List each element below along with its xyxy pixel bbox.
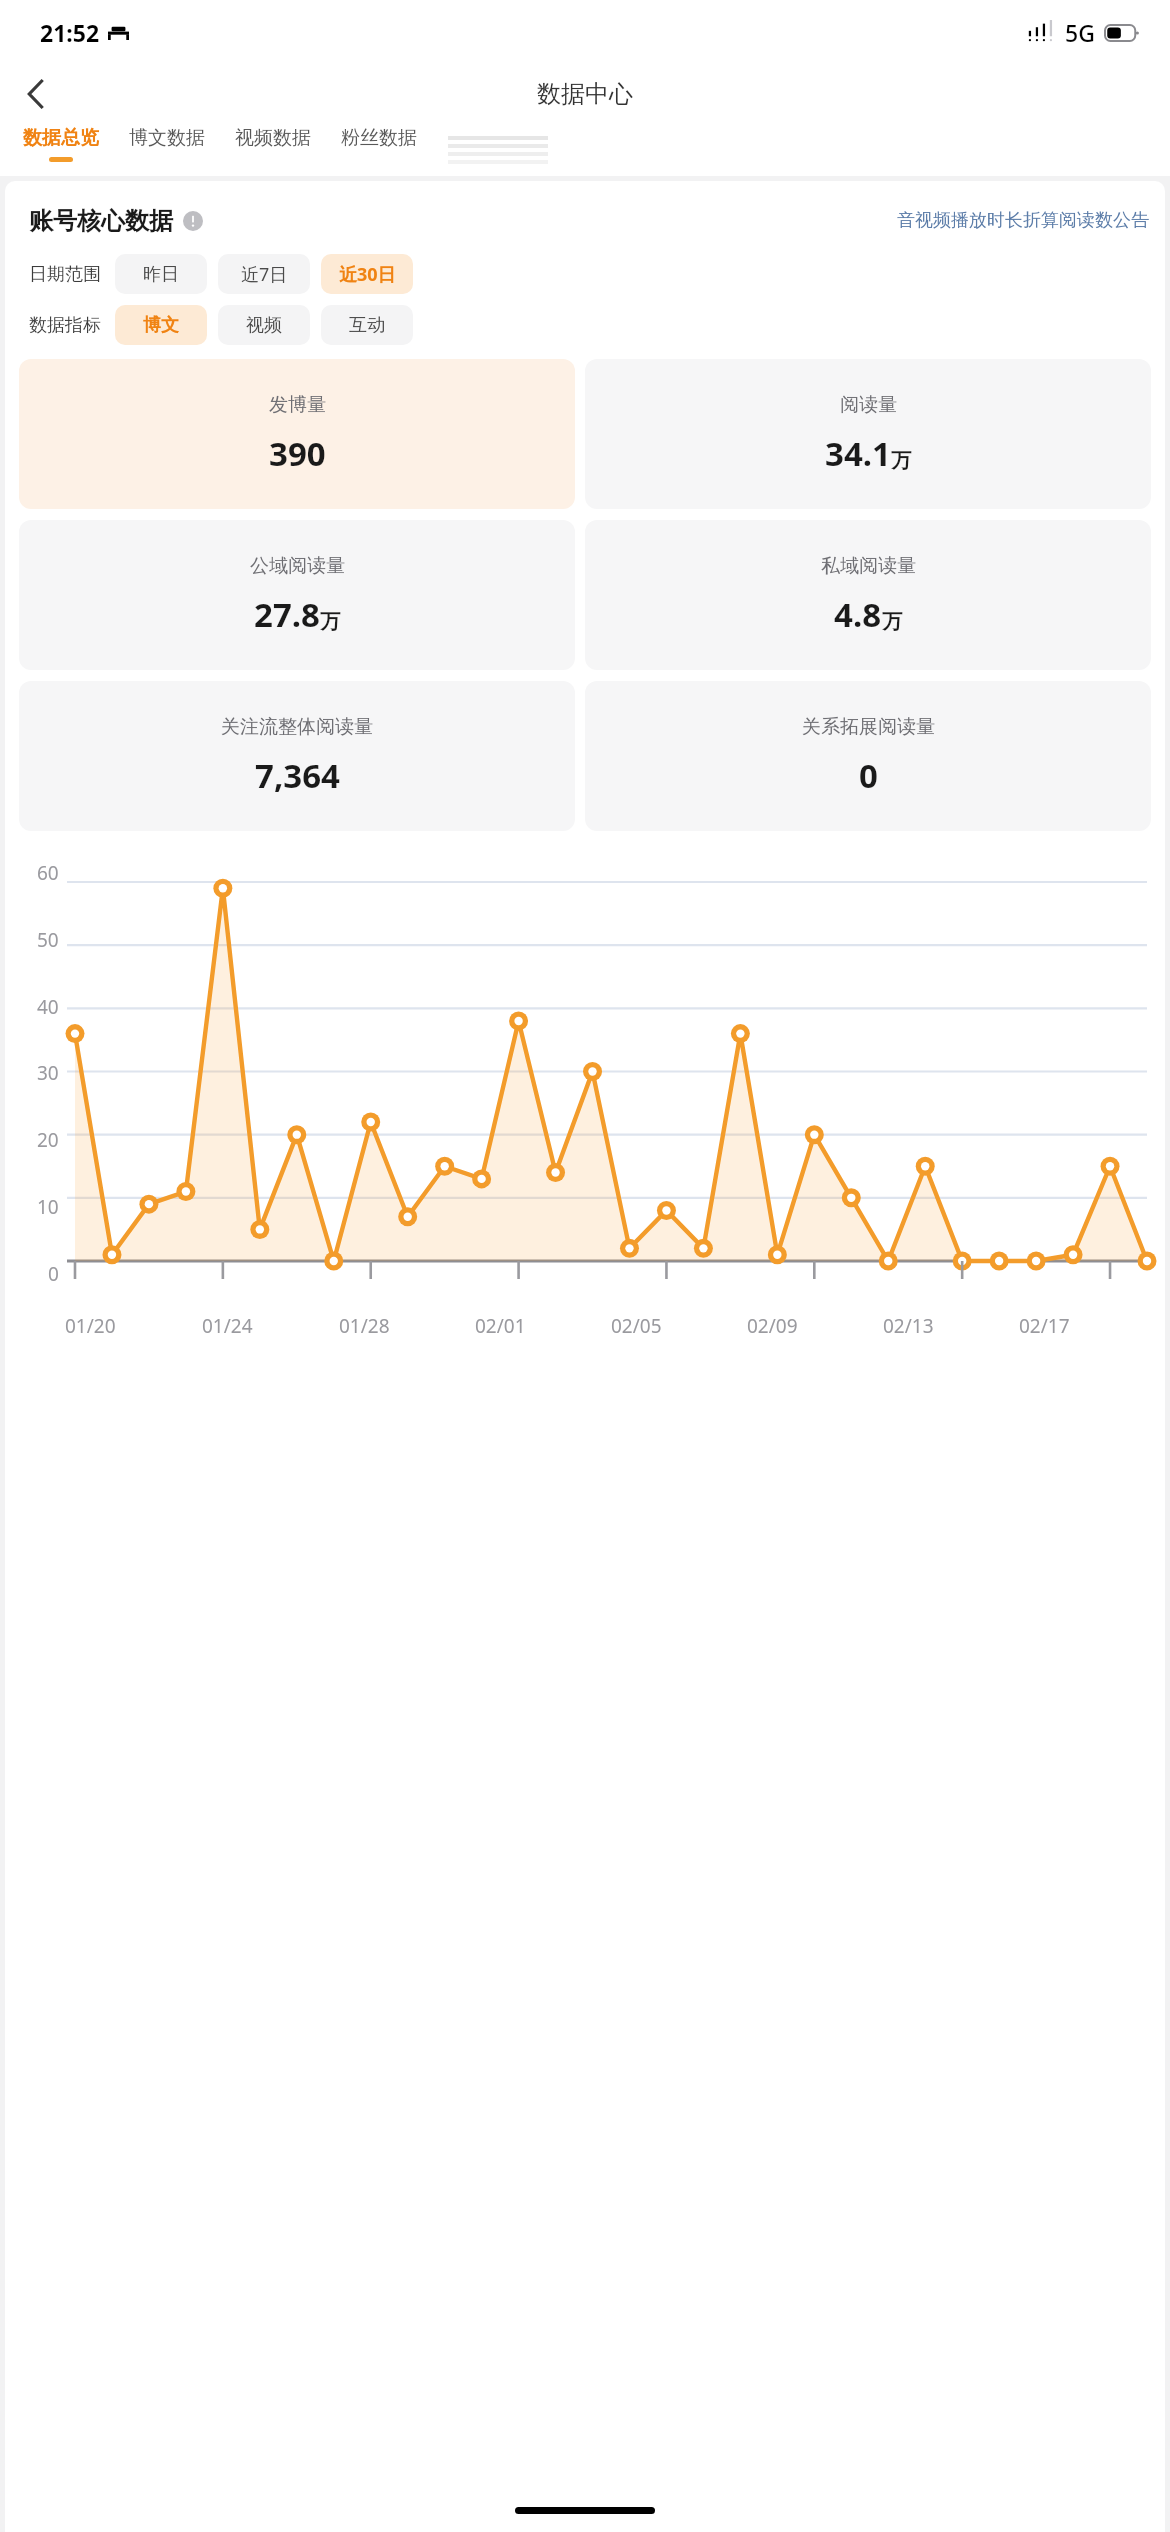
button[interactable]: 昨日 bbox=[115, 254, 207, 294]
staticText: 博文数据 bbox=[129, 126, 205, 150]
button[interactable]: 发博量 bbox=[19, 359, 575, 509]
staticText: 阅读量 bbox=[840, 393, 897, 417]
staticText: 4.8 bbox=[834, 592, 882, 637]
staticText: 日期范围 bbox=[29, 263, 101, 286]
button[interactable]: 阅读量 bbox=[585, 359, 1151, 509]
staticText: 万 bbox=[882, 609, 902, 634]
staticText: 34.1 bbox=[825, 431, 891, 476]
button[interactable]: 互动 bbox=[321, 305, 413, 345]
staticText: 01/24 bbox=[202, 1313, 253, 1339]
staticText: 30 bbox=[37, 1060, 59, 1086]
staticText: 21:52 bbox=[40, 17, 100, 48]
button[interactable]: 粉丝数据 bbox=[326, 124, 432, 159]
staticText: 02/01 bbox=[475, 1313, 526, 1339]
button[interactable]: Back bbox=[8, 66, 64, 122]
staticText: 数据指标 bbox=[29, 314, 101, 337]
staticText: 01/20 bbox=[65, 1313, 116, 1339]
staticText: 万 bbox=[320, 609, 340, 634]
staticText: 0 bbox=[48, 1261, 59, 1287]
button[interactable]: 私域阅读量 bbox=[585, 520, 1151, 670]
staticText: 01/28 bbox=[339, 1313, 390, 1339]
button[interactable]: 视频数据 bbox=[220, 124, 326, 159]
button[interactable]: 数据说明 bbox=[181, 209, 205, 233]
staticText: 数据总览 bbox=[23, 126, 99, 150]
staticText: 390 bbox=[269, 431, 326, 476]
staticText: 私域阅读量 bbox=[821, 554, 916, 578]
staticText: 公域阅读量 bbox=[250, 554, 345, 578]
staticText: 20 bbox=[37, 1127, 59, 1153]
staticText: 02/17 bbox=[1019, 1313, 1070, 1339]
staticText: 10 bbox=[37, 1194, 59, 1220]
staticText: 5G bbox=[1065, 17, 1095, 48]
staticText: 音视频播放时长折算阅读数公告 bbox=[897, 209, 1149, 232]
staticText: 02/13 bbox=[883, 1313, 934, 1339]
staticText: 近7日 bbox=[241, 262, 288, 287]
button[interactable]: 公域阅读量 bbox=[19, 520, 575, 670]
staticText: 60 bbox=[37, 860, 59, 886]
staticText: 粉丝数据 bbox=[341, 126, 417, 150]
button[interactable]: 数据总览 bbox=[8, 124, 114, 164]
staticText: 40 bbox=[37, 994, 59, 1020]
staticText: 万 bbox=[891, 448, 911, 473]
staticText: 7,364 bbox=[255, 753, 340, 798]
staticText: 02/09 bbox=[747, 1313, 798, 1339]
staticText: 昨日 bbox=[143, 263, 179, 286]
staticText: 数据中心 bbox=[537, 79, 633, 109]
staticText: 博文 bbox=[143, 314, 179, 337]
staticText: 0 bbox=[859, 753, 878, 798]
staticText: 账号核心数据 bbox=[29, 206, 173, 236]
button[interactable]: 音视频播放时长折算阅读数公告 bbox=[893, 203, 1153, 238]
staticText: 近30日 bbox=[339, 262, 396, 287]
button[interactable]: 视频 bbox=[218, 305, 310, 345]
staticText: 50 bbox=[37, 927, 59, 953]
staticText: 视频 bbox=[246, 314, 282, 337]
button[interactable]: 博文数据 bbox=[114, 124, 220, 159]
button[interactable]: 近30日 bbox=[321, 254, 413, 294]
staticText: 02/05 bbox=[611, 1313, 662, 1339]
button[interactable]: 关注流整体阅读量 bbox=[19, 681, 575, 831]
staticText: 视频数据 bbox=[235, 126, 311, 150]
button[interactable]: 关系拓展阅读量 bbox=[585, 681, 1151, 831]
staticText: 关系拓展阅读量 bbox=[802, 715, 935, 739]
staticText: 互动 bbox=[349, 314, 385, 337]
staticText: 关注流整体阅读量 bbox=[221, 715, 373, 739]
button[interactable]: 博文 bbox=[115, 305, 207, 345]
staticText: 27.8 bbox=[254, 592, 320, 637]
button[interactable]: 近7日 bbox=[218, 254, 310, 294]
staticText: 发博量 bbox=[269, 393, 326, 417]
